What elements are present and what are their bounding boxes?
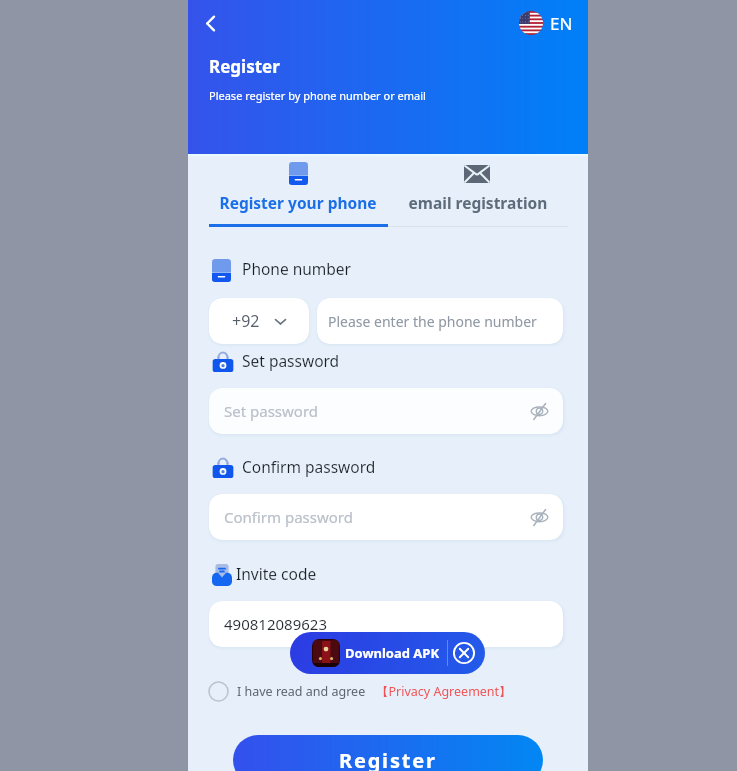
button[interactable] <box>388 154 568 232</box>
button[interactable]: Show password <box>530 402 549 421</box>
staticText: Register your phone <box>208 192 388 213</box>
staticText: email registration <box>388 192 568 213</box>
staticText: Set password <box>242 350 340 371</box>
staticText: I have read and agree <box>237 683 366 700</box>
staticText: Download APK <box>345 644 440 662</box>
staticText: Please register by phone number or email <box>209 88 426 103</box>
button[interactable]: I have read and agree <box>208 680 512 702</box>
staticText: Phone number <box>242 258 352 279</box>
staticText: 490812089623 <box>224 614 327 634</box>
button[interactable]: EN <box>519 11 573 35</box>
button[interactable]: +92 <box>209 298 309 344</box>
staticText: Set password <box>224 401 319 421</box>
staticText: Register <box>339 747 437 771</box>
button[interactable]: Close <box>453 642 475 664</box>
button[interactable]: Confirm password <box>209 494 563 540</box>
staticText: EN <box>550 12 573 35</box>
staticText: 【Privacy Agreement】 <box>376 683 512 700</box>
staticText: Confirm password <box>242 456 376 477</box>
button[interactable]: Back <box>193 6 227 40</box>
button[interactable]: Please enter the phone number <box>317 298 563 344</box>
button[interactable]: Set password <box>209 388 563 434</box>
button[interactable] <box>209 154 388 232</box>
button[interactable]: Download APK <box>290 632 485 674</box>
staticText: Invite code <box>236 563 317 584</box>
staticText: +92 <box>232 310 260 332</box>
button[interactable]: Show password <box>530 508 549 527</box>
button[interactable]: 490812089623 <box>209 601 563 647</box>
staticText: Please enter the phone number <box>328 312 537 331</box>
button[interactable]: Register <box>233 735 543 771</box>
staticText: Confirm password <box>224 507 353 527</box>
staticText: Register <box>209 55 280 78</box>
